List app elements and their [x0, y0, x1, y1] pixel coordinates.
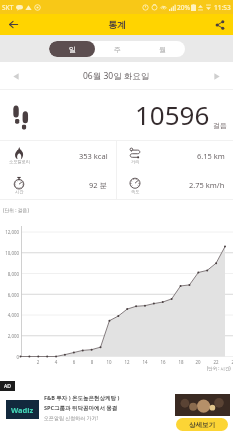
staticText: 속도 — [131, 189, 140, 194]
button[interactable]: 소모칼로리 — [7, 141, 108, 170]
button[interactable]: AD — [0, 380, 233, 437]
staticText: 걸음 — [213, 121, 227, 130]
button[interactable]: Back — [0, 14, 26, 35]
staticText: 2.75 km/h — [189, 180, 225, 190]
button[interactable]: 일 — [49, 41, 95, 57]
staticText: 16 — [158, 359, 168, 365]
staticText: 10 — [104, 359, 114, 365]
staticText: 오픈알림 신청하러 가기! — [44, 415, 98, 422]
staticText: 8 — [87, 359, 97, 365]
staticText: 4 — [51, 359, 61, 365]
staticText: 06월 30일 화요일 — [83, 70, 150, 82]
staticText: 상세보기 — [189, 421, 215, 429]
staticText: 2 — [33, 359, 43, 365]
staticText: 12 — [122, 359, 132, 365]
button[interactable]: 속도 — [123, 170, 225, 200]
staticText: 6,000 — [0, 292, 19, 298]
staticText: 10,000 — [0, 250, 19, 256]
staticText: SPC그룹과 뒤닥꽁마에서 뭉결 — [44, 404, 118, 412]
button[interactable]: 시간 — [7, 170, 108, 200]
staticText: 11:53 — [214, 3, 231, 12]
staticText: 22 — [211, 359, 221, 365]
staticText: SKT — [2, 3, 14, 12]
button[interactable]: 상세보기 — [176, 418, 228, 431]
staticText: 18 — [176, 359, 186, 365]
staticText: 거리 — [131, 159, 140, 164]
staticText: 주 — [114, 45, 121, 54]
staticText: AD — [4, 383, 11, 390]
button[interactable]: Share — [207, 14, 233, 35]
staticText: (단위 : 시간) — [207, 365, 231, 371]
staticText: (단위 : 걸음) — [3, 207, 29, 214]
staticText: 20 — [193, 359, 203, 365]
staticText: 8,000 — [0, 271, 19, 277]
staticText: 24 — [229, 359, 233, 365]
staticText: 12,000 — [0, 229, 19, 235]
staticText: 6.15 km — [197, 151, 225, 161]
button[interactable]: 월 — [140, 41, 185, 57]
staticText: 2,000 — [0, 333, 19, 339]
staticText: 6 — [69, 359, 79, 365]
staticText: 통계 — [108, 19, 126, 30]
staticText: 10596 — [135, 97, 210, 132]
button[interactable]: Next day — [201, 62, 233, 90]
staticText: 4,000 — [0, 312, 19, 318]
staticText: F&B 투자 ) 온도높은현상케탕 ) — [44, 394, 120, 402]
staticText: 일 — [69, 45, 76, 54]
staticText: 월 — [159, 45, 166, 54]
staticText: 0 — [0, 354, 19, 360]
staticText: 14 — [140, 359, 150, 365]
staticText: 92 분 — [89, 180, 108, 190]
staticText: 353 kcal — [79, 151, 108, 161]
staticText: 20% — [177, 3, 190, 12]
button[interactable]: 주 — [95, 41, 140, 57]
button[interactable]: Previous day — [0, 62, 32, 90]
staticText: 시간 — [15, 189, 24, 194]
button[interactable]: 거리 — [123, 141, 225, 170]
staticText: Wadiz — [11, 405, 34, 415]
staticText: 소모칼로리 — [9, 159, 30, 164]
